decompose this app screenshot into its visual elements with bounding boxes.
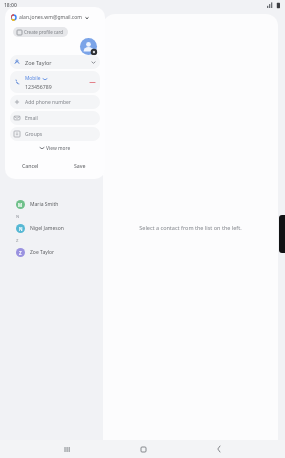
button[interactable]: N [7, 221, 103, 236]
staticText: Add phone number [25, 99, 71, 106]
staticText: Z [19, 250, 22, 256]
button[interactable]: Change contact photo [80, 38, 97, 55]
staticText: M [18, 202, 23, 208]
staticText: Zoe Taylor [25, 59, 52, 66]
button[interactable]: Mobile [10, 71, 100, 93]
staticText: Z [16, 238, 19, 244]
staticText: Nigel Jameson [30, 225, 64, 232]
staticText: N [16, 214, 20, 220]
staticText: Create profile card [24, 29, 64, 35]
staticText: alan.jones.wm@gmail.com [19, 14, 82, 21]
staticText: N [19, 226, 23, 232]
button[interactable]: Create profile card [13, 27, 68, 37]
button[interactable]: Add phone number [10, 95, 100, 109]
staticText: Cancel [22, 162, 39, 169]
staticText: Email [25, 115, 38, 122]
button[interactable]: Cancel [5, 159, 55, 172]
staticText: Mobile [25, 75, 41, 82]
staticText: Zoe Taylor [30, 249, 55, 256]
staticText: 18:00 [4, 2, 17, 9]
staticText: Select a contact from the list on the le… [139, 224, 242, 231]
button[interactable]: Z [7, 245, 103, 260]
button[interactable]: Zoe Taylor [10, 55, 100, 69]
staticText: Save [74, 162, 86, 169]
staticText: View more [46, 145, 71, 152]
button[interactable]: alan.jones.wm@gmail.com [11, 12, 89, 23]
button[interactable]: View more [5, 141, 105, 155]
button[interactable]: Back [209, 440, 229, 458]
staticText: 123456789 [25, 83, 52, 90]
button[interactable]: Groups [10, 127, 100, 141]
button[interactable]: Email [10, 111, 100, 125]
button[interactable]: M [7, 197, 103, 212]
staticText: Maria Smith [30, 201, 59, 208]
staticText: Groups [25, 131, 43, 138]
button[interactable]: Save [55, 159, 105, 172]
button[interactable]: Home [133, 440, 153, 458]
button[interactable]: Recents [57, 440, 77, 458]
button[interactable]: Remove phone number [88, 78, 96, 86]
